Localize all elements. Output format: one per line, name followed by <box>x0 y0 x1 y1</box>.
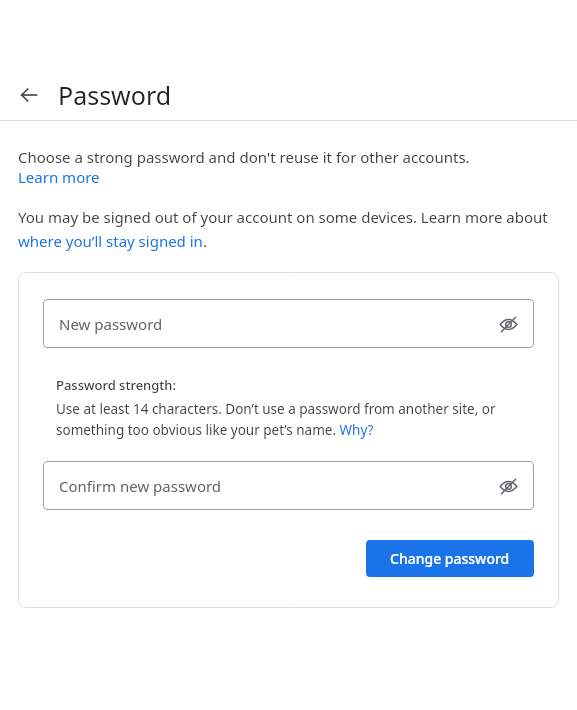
staticText: Password <box>58 78 172 112</box>
staticText: Choose a strong password and don't reuse… <box>18 147 470 167</box>
staticText: Learn more <box>18 167 100 187</box>
staticText: Password strength: <box>56 376 176 394</box>
button[interactable]: Back <box>14 80 44 110</box>
staticText: Change password <box>390 549 510 568</box>
staticText: New password <box>59 314 163 334</box>
button[interactable]: Change password <box>366 540 534 577</box>
button[interactable]: Show password <box>492 308 524 340</box>
staticText: Use at least 14 characters. Don’t use a … <box>56 400 534 439</box>
button[interactable]: Learn more <box>18 167 100 187</box>
button[interactable]: Confirm new password <box>43 461 534 510</box>
staticText: Confirm new password <box>59 476 222 496</box>
button[interactable]: Show password <box>492 470 524 502</box>
staticText: You may be signed out of your account on… <box>18 207 559 251</box>
button[interactable]: New password <box>43 299 534 348</box>
